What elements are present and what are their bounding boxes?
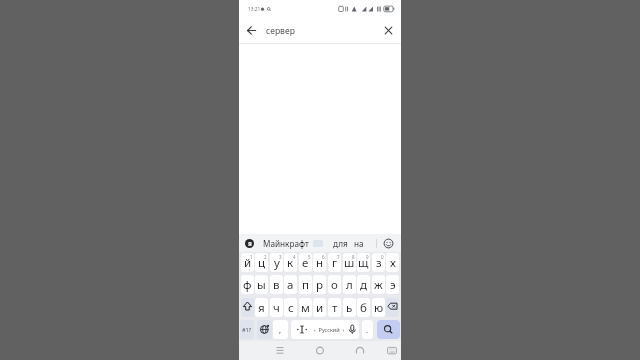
staticText: я bbox=[258, 300, 265, 316]
button[interactable] bbox=[386, 298, 399, 317]
button[interactable]: ы bbox=[255, 275, 268, 294]
staticText: , bbox=[279, 324, 282, 335]
staticText: в bbox=[273, 277, 280, 293]
button[interactable]: в bbox=[270, 275, 283, 294]
staticText: д bbox=[360, 277, 367, 293]
button[interactable]: ‹ Русский › bbox=[291, 320, 359, 339]
staticText: м bbox=[301, 300, 310, 316]
staticText: у bbox=[274, 255, 280, 271]
button[interactable] bbox=[244, 23, 259, 38]
button[interactable]: на bbox=[354, 238, 364, 249]
button[interactable]: у bbox=[270, 253, 283, 272]
button[interactable] bbox=[241, 298, 254, 317]
staticText: 9 bbox=[366, 254, 369, 260]
staticText: й bbox=[244, 255, 252, 271]
staticText: ь bbox=[346, 300, 353, 316]
button[interactable]: т bbox=[328, 298, 341, 317]
button[interactable]: с bbox=[284, 298, 297, 317]
staticText: ц bbox=[258, 255, 266, 271]
button[interactable]: #1? bbox=[240, 320, 254, 339]
button[interactable]: о bbox=[328, 275, 341, 294]
button[interactable]: ш bbox=[343, 253, 356, 272]
staticText: 3 bbox=[279, 254, 282, 260]
staticText: ш bbox=[344, 255, 355, 271]
staticText: х bbox=[390, 255, 396, 271]
button[interactable]: х bbox=[386, 253, 399, 272]
button[interactable]: з bbox=[372, 253, 385, 272]
button[interactable]: д bbox=[357, 275, 370, 294]
button[interactable]: , bbox=[273, 320, 288, 339]
button[interactable]: ц bbox=[255, 253, 268, 272]
button[interactable] bbox=[257, 320, 272, 339]
staticText: ч bbox=[273, 300, 280, 316]
button[interactable]: м bbox=[299, 298, 312, 317]
button[interactable]: . bbox=[362, 320, 373, 339]
staticText: г bbox=[332, 255, 338, 271]
staticText: 13:21 bbox=[248, 6, 261, 13]
staticText: б bbox=[360, 300, 367, 316]
staticText: э bbox=[390, 277, 396, 293]
button[interactable]: н bbox=[313, 253, 326, 272]
staticText: о bbox=[331, 277, 338, 293]
button[interactable]: ф bbox=[241, 275, 254, 294]
staticText: 8 bbox=[352, 254, 355, 260]
button[interactable] bbox=[312, 343, 328, 358]
button[interactable]: е bbox=[299, 253, 312, 272]
button[interactable] bbox=[384, 343, 400, 358]
staticText: 1 bbox=[250, 254, 253, 260]
staticText: 4 bbox=[293, 254, 296, 260]
staticText: ы bbox=[257, 277, 266, 293]
staticText: Я bbox=[248, 240, 252, 247]
staticText: е bbox=[302, 255, 309, 271]
button[interactable]: Майнкрафт bbox=[263, 238, 309, 249]
button[interactable]: и bbox=[313, 298, 326, 317]
staticText: #1? bbox=[242, 326, 252, 333]
button[interactable]: щ bbox=[357, 253, 370, 272]
button[interactable]: п bbox=[299, 275, 312, 294]
staticText: 7 bbox=[337, 254, 340, 260]
staticText: ж bbox=[374, 277, 383, 293]
button[interactable]: я bbox=[255, 298, 268, 317]
button[interactable]: э bbox=[386, 275, 399, 294]
staticText: л bbox=[346, 277, 353, 293]
button[interactable]: р bbox=[313, 275, 326, 294]
staticText: ф bbox=[243, 277, 252, 293]
staticText: т bbox=[332, 300, 338, 316]
staticText: з bbox=[376, 255, 382, 271]
button[interactable]: ь bbox=[343, 298, 356, 317]
button[interactable]: ж bbox=[372, 275, 385, 294]
button[interactable]: ч bbox=[270, 298, 283, 317]
button[interactable]: для bbox=[333, 238, 348, 249]
staticText: ю bbox=[374, 300, 384, 316]
staticText: 6 bbox=[322, 254, 325, 260]
button[interactable]: к bbox=[284, 253, 297, 272]
button[interactable]: л bbox=[343, 275, 356, 294]
button[interactable] bbox=[272, 343, 288, 358]
button[interactable]: б bbox=[357, 298, 370, 317]
button[interactable]: ю bbox=[372, 298, 385, 317]
staticText: 0 bbox=[381, 254, 384, 260]
button[interactable]: й bbox=[241, 253, 254, 272]
staticText: 2 bbox=[264, 254, 267, 260]
button[interactable]: Я bbox=[245, 239, 254, 248]
button[interactable] bbox=[381, 236, 396, 251]
button[interactable] bbox=[381, 23, 396, 38]
staticText: с bbox=[288, 300, 294, 316]
button[interactable]: а bbox=[284, 275, 297, 294]
staticText: и bbox=[316, 300, 324, 316]
button[interactable] bbox=[377, 320, 400, 339]
button[interactable]: г bbox=[328, 253, 341, 272]
button[interactable] bbox=[352, 343, 368, 358]
staticText: п bbox=[302, 277, 309, 293]
staticText: . bbox=[366, 324, 369, 335]
staticText: 5 bbox=[308, 254, 311, 260]
staticText: щ bbox=[358, 255, 369, 271]
staticText: н bbox=[316, 255, 324, 271]
staticText: к bbox=[287, 255, 294, 271]
staticText: а bbox=[287, 277, 294, 293]
staticText: р bbox=[316, 277, 323, 293]
staticText: ‹ Русский › bbox=[314, 326, 345, 333]
staticText: сервер bbox=[266, 25, 295, 37]
